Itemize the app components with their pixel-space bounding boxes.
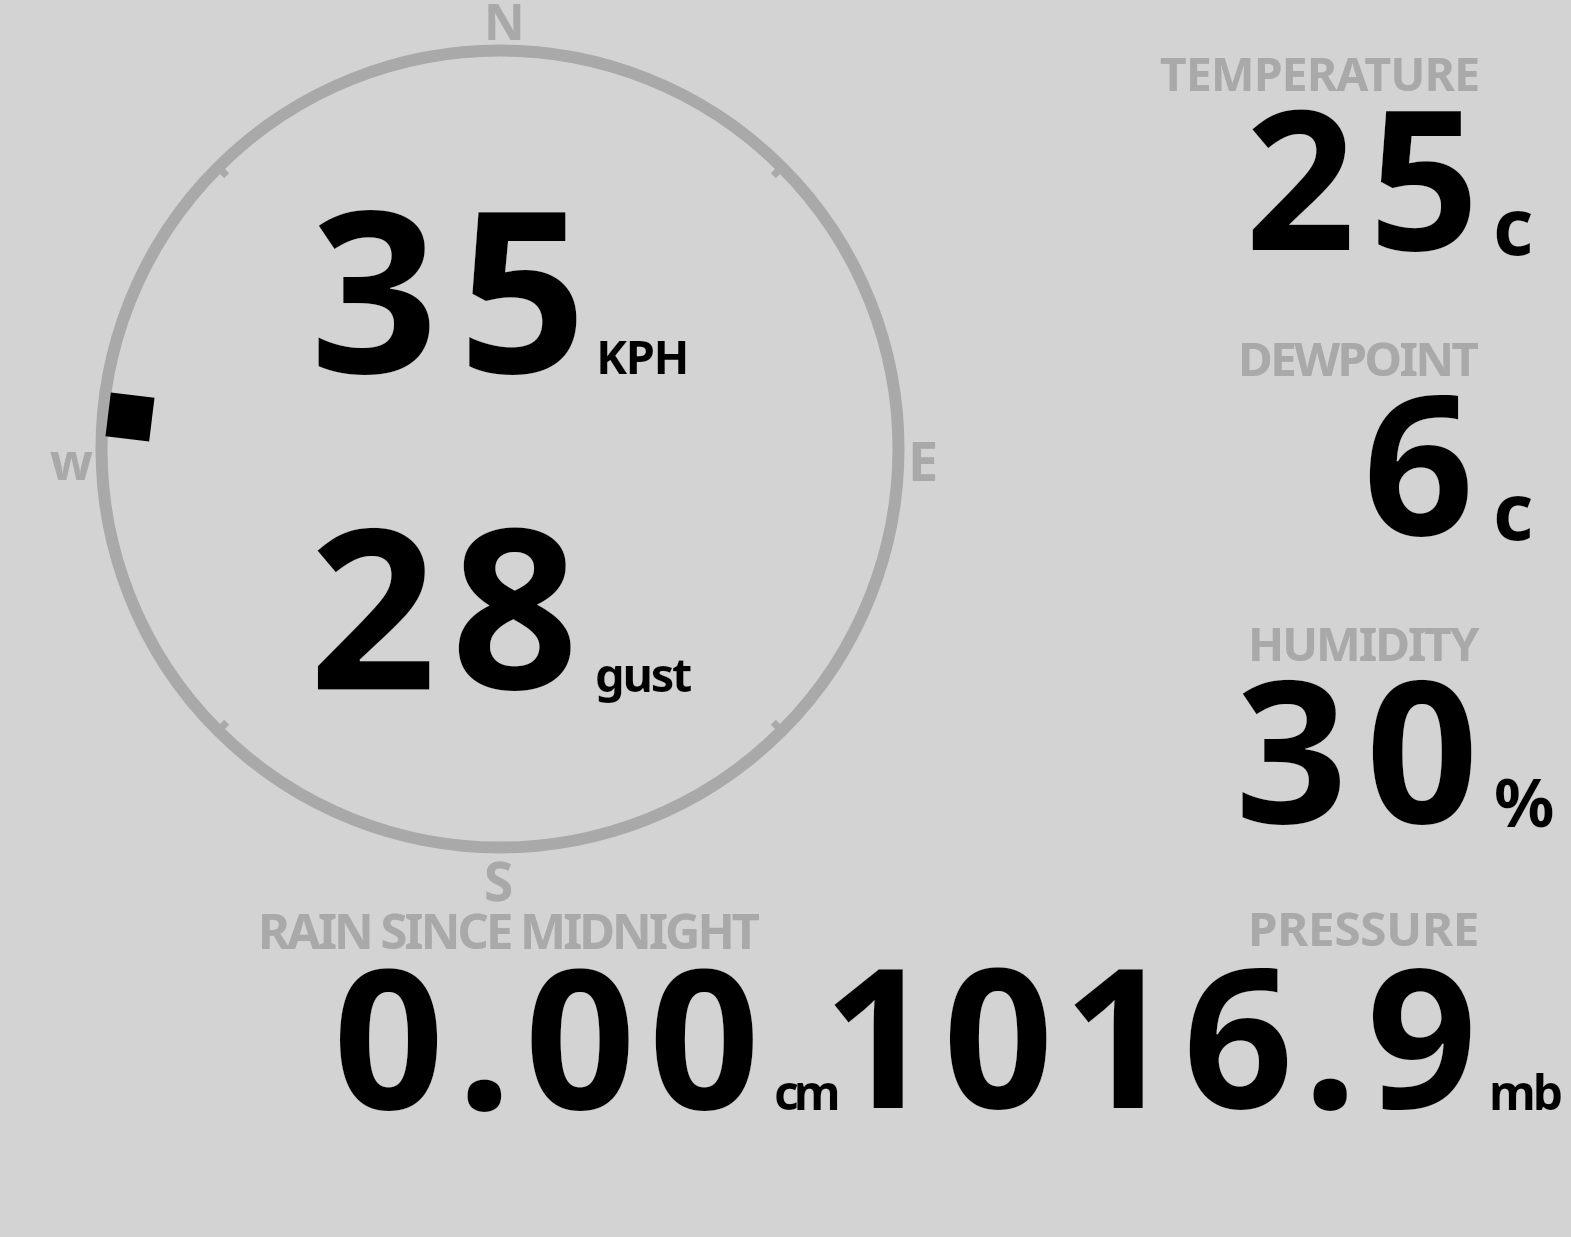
staticText: PRESSURE	[1248, 895, 1480, 960]
staticText: TEMPERATURE	[1160, 42, 1480, 105]
staticText: N	[484, 0, 525, 55]
staticText: 25	[1245, 43, 1493, 306]
staticText: c	[1493, 457, 1534, 563]
staticText: c	[1493, 172, 1534, 278]
staticText: w	[50, 427, 93, 495]
button[interactable]: Temperature 25 c	[1000, 40, 1560, 310]
staticText: 35	[310, 133, 607, 439]
staticText: 30	[1235, 612, 1497, 881]
staticText: E	[908, 423, 939, 497]
staticText: RAIN SINCE MIDNIGHT	[258, 897, 758, 963]
staticText: HUMIDITY	[1248, 610, 1478, 675]
staticText: 6	[1363, 327, 1475, 592]
button[interactable]: Rain since midnight 0.00 cm	[250, 900, 870, 1130]
staticText: 1016.9	[823, 901, 1487, 1164]
staticText: gust	[595, 642, 691, 706]
staticText: 0.00	[333, 901, 773, 1166]
staticText: S	[484, 844, 514, 916]
staticText: 28	[309, 450, 593, 754]
staticText: cm	[774, 1059, 836, 1124]
button[interactable]: Dewpoint 6 c	[1000, 320, 1560, 570]
staticText: %	[1494, 755, 1555, 846]
button[interactable]: Humidity 30 percent	[1000, 600, 1560, 850]
staticText: KPH	[596, 324, 688, 388]
button[interactable]: Pressure 1016.9 mb	[880, 900, 1570, 1130]
button[interactable]: Wind 35 KPH, gusting 28, from the west	[60, 10, 960, 900]
staticText: DEWPOINT	[1238, 325, 1477, 390]
staticText: mb	[1489, 1059, 1561, 1124]
